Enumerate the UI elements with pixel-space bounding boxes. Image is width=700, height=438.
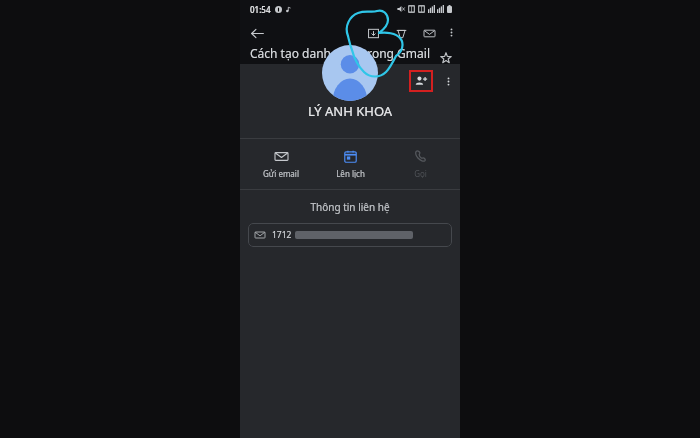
button[interactable]: 1712 [248,223,452,247]
button[interactable]: Lên lịch [321,146,379,183]
staticText: Cách tạo danh sách trong Gmail [250,45,450,61]
staticText: Gửi email [263,168,299,179]
button[interactable]: Mark unread [419,23,439,43]
button[interactable]: Back [246,22,268,44]
staticText: 1712 [272,229,292,241]
staticText: Gọi [414,168,427,179]
staticText: Thông tin liên hệ [240,200,460,214]
button[interactable]: More options [439,70,457,92]
staticText: Lên lịch [336,168,365,179]
button[interactable]: Archive [363,23,383,43]
button[interactable]: Gọi [391,146,449,183]
button[interactable]: More options [442,23,460,41]
button[interactable]: Delete [391,23,411,43]
staticText: LÝ ANH KHOA [240,102,460,120]
button[interactable]: Gửi email [252,146,310,183]
button[interactable]: Add to contacts [409,70,433,92]
button[interactable]: Contact photo [322,45,378,101]
staticText: 01:54 [250,4,271,15]
